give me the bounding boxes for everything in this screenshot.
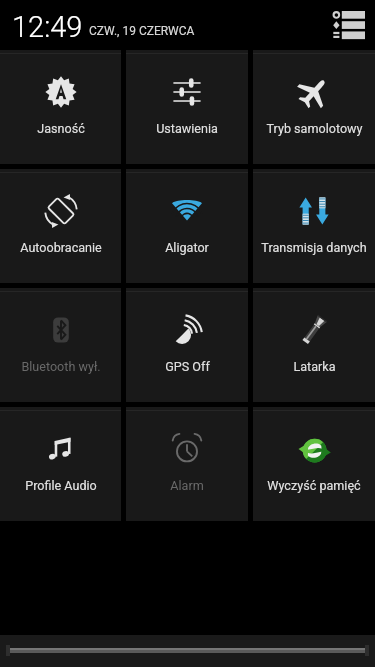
button[interactable]: Latarka (253, 288, 375, 402)
button[interactable]: Jasność (0, 50, 121, 164)
staticText: CZW., 19 CZERWCA (89, 24, 195, 38)
staticText: Transmisja danych (261, 240, 367, 255)
staticText: Wyczyść pamięć (267, 478, 361, 493)
staticText: Alarm (170, 478, 204, 493)
staticText: Tryb samolotowy (266, 121, 363, 136)
button[interactable]: Transmisja danych (253, 169, 375, 283)
button[interactable]: Drag handle (0, 635, 375, 667)
button[interactable]: Quick settings (327, 3, 371, 47)
staticText: GPS Off (165, 359, 210, 374)
button[interactable]: Wyczyść pamięć (253, 407, 375, 521)
button[interactable]: GPS Off (126, 288, 248, 402)
staticText: Jasność (37, 121, 85, 136)
button[interactable]: Alarm (126, 407, 248, 521)
staticText: Bluetooth wył. (21, 359, 101, 374)
staticText: Profile Audio (25, 478, 97, 493)
button[interactable]: Ustawienia (126, 50, 248, 164)
button[interactable]: Aligator (126, 169, 248, 283)
button[interactable]: Tryb samolotowy (253, 50, 375, 164)
staticText: Latarka (293, 359, 336, 374)
button[interactable]: Profile Audio (0, 407, 121, 521)
staticText: Autoobracanie (20, 240, 102, 255)
button[interactable]: Autoobracanie (0, 169, 121, 283)
staticText: Ustawienia (156, 121, 218, 136)
staticText: Aligator (165, 240, 209, 255)
button[interactable]: Bluetooth wył. (0, 288, 121, 402)
staticText: 12:49 (12, 10, 83, 44)
